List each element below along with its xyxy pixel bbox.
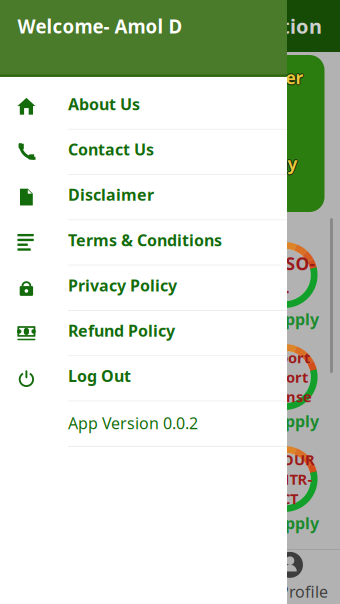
staticText: License <box>257 387 312 406</box>
staticText: Disclaimer <box>68 184 154 205</box>
button[interactable]: Privacy Policy <box>0 266 287 311</box>
button[interactable]: Import <box>252 344 340 442</box>
staticText: Apply <box>274 512 319 534</box>
staticText: Export <box>261 367 308 387</box>
staticText: Apply <box>274 410 319 432</box>
staticText: Contact Us <box>68 139 154 160</box>
staticText: Apply Today <box>192 152 297 175</box>
button[interactable]: PERSONAL <box>252 242 340 340</box>
staticText: Grab your dream number <box>85 66 304 89</box>
button[interactable]: Log Out <box>0 356 287 402</box>
staticText: Refund Policy <box>68 320 175 341</box>
staticText: App Version 0.0.2 <box>68 412 198 434</box>
staticText: PERSONAL <box>254 252 316 298</box>
staticText: Apply <box>274 308 319 330</box>
staticText: LABOUR <box>254 450 315 469</box>
button[interactable]: Contact Us <box>0 130 287 175</box>
staticText: Apply Today <box>192 153 297 176</box>
staticText: Loan Application <box>153 13 322 39</box>
staticText: Import <box>259 348 310 367</box>
staticText: Apply Today <box>192 151 297 174</box>
button[interactable]: Terms & Conditions <box>0 220 287 266</box>
staticText: Grab your dream number <box>84 66 303 89</box>
button[interactable]: LABOUR <box>252 446 340 544</box>
button[interactable]: About Us <box>0 84 287 130</box>
staticText: Grab your dream number <box>84 66 303 89</box>
staticText: Log Out <box>68 365 131 386</box>
staticText: Grab your dream number <box>84 65 303 88</box>
staticText: Apply Today <box>192 152 297 175</box>
staticText: Privacy Policy <box>68 275 177 296</box>
button[interactable]: Disclaimer <box>0 175 287 220</box>
staticText: My Profile <box>252 581 328 602</box>
button[interactable]: Refund Policy <box>0 311 287 356</box>
staticText: CONTR- <box>257 469 313 489</box>
button[interactable]: My Profile <box>240 550 340 604</box>
staticText: Grab your dream number <box>84 67 303 90</box>
staticText: Welcome- Amol D <box>17 14 182 39</box>
staticText: About Us <box>68 93 140 115</box>
staticText: Apply Today <box>193 152 298 175</box>
staticText: ACT <box>271 489 298 508</box>
staticText: Terms & Conditions <box>68 229 222 250</box>
